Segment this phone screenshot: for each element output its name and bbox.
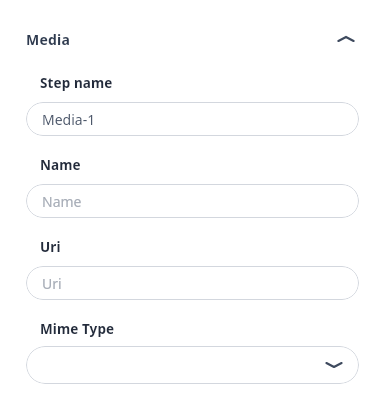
staticText: Name (40, 156, 81, 174)
button[interactable]: Collapse Media section (333, 26, 359, 52)
button[interactable]: Step name (26, 102, 359, 136)
staticText: Media-1 (42, 110, 96, 129)
staticText: Media (26, 30, 70, 49)
staticText: Mime Type (40, 320, 115, 338)
button[interactable]: Mime Type (26, 346, 359, 384)
button[interactable]: Uri (26, 266, 359, 300)
staticText: Name (42, 192, 82, 211)
staticText: Uri (40, 238, 61, 256)
staticText: Uri (42, 274, 62, 293)
button[interactable]: Media (26, 26, 359, 52)
button[interactable]: Name (26, 184, 359, 218)
staticText: Step name (40, 74, 113, 92)
